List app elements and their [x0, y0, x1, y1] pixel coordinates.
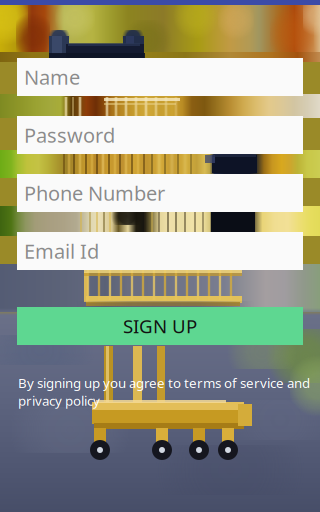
- button[interactable]: Password: [17, 116, 303, 154]
- button[interactable]: Phone Number: [17, 174, 303, 212]
- button[interactable]: Name: [17, 58, 303, 96]
- staticText: Email Id: [24, 238, 99, 264]
- staticText: privacy policy: [18, 392, 100, 409]
- staticText: By signing up you agree to terms of serv…: [18, 374, 310, 392]
- staticText: Name: [24, 64, 80, 90]
- staticText: Phone Number: [24, 180, 165, 206]
- staticText: SIGN UP: [123, 314, 197, 338]
- button[interactable]: Email Id: [17, 232, 303, 270]
- staticText: Password: [24, 122, 115, 148]
- button[interactable]: SIGN UP: [17, 307, 303, 345]
